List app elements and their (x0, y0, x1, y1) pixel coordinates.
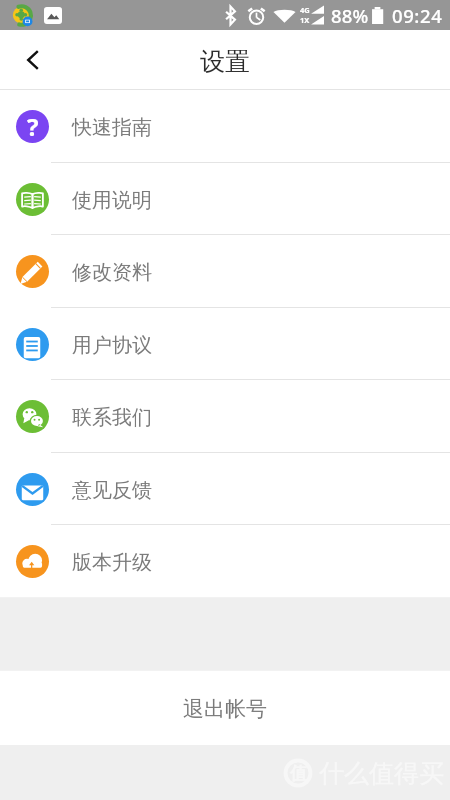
staticText: ? (27, 110, 39, 143)
staticText: 4G (300, 5, 310, 15)
button[interactable]: 修改资料 (0, 235, 450, 308)
button[interactable]: 意见反馈 (0, 453, 450, 525)
staticText: 09:24 (392, 3, 443, 28)
staticText: 88% (331, 3, 369, 28)
button[interactable]: 用户协议 (0, 308, 450, 380)
staticText: 1X (300, 15, 310, 25)
button[interactable]: 使用说明 (0, 163, 450, 235)
staticText: 快速指南 (72, 115, 152, 140)
staticText: 值 (290, 763, 307, 784)
staticText: 意见反馈 (72, 478, 152, 503)
staticText: 什么值得买 (319, 758, 444, 789)
staticText: 设置 (200, 46, 250, 77)
staticText: 版本升级 (72, 550, 152, 575)
staticText: 退出帐号 (183, 696, 267, 722)
button[interactable]: 退出帐号 (0, 671, 450, 745)
button[interactable]: 联系我们 (0, 380, 450, 453)
staticText: 修改资料 (72, 260, 152, 285)
button[interactable]: 版本升级 (0, 525, 450, 597)
staticText: 用户协议 (72, 333, 152, 358)
button[interactable]: Back (0, 30, 66, 90)
staticText: 使用说明 (72, 188, 152, 213)
button[interactable]: ? (0, 90, 450, 163)
staticText: 联系我们 (72, 405, 152, 430)
